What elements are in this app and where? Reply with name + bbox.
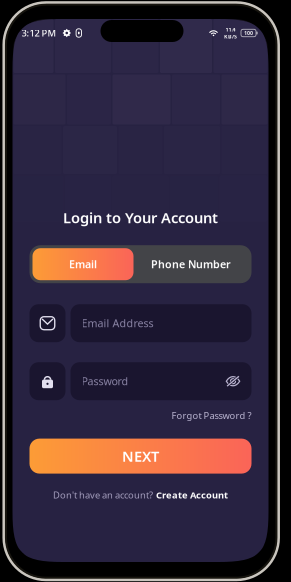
button[interactable]: Create Account	[156, 489, 228, 501]
button[interactable]: Password	[29, 362, 65, 400]
staticText: Login to Your Account	[63, 208, 218, 227]
staticText: Email Address	[81, 316, 153, 330]
button[interactable]: NEXT	[29, 439, 251, 474]
staticText: Don't have an account?	[53, 489, 153, 501]
staticText: NEXT	[122, 446, 159, 466]
button[interactable]: Forgot Password ?	[171, 409, 251, 422]
staticText: Password	[81, 374, 128, 388]
button[interactable]: Email	[32, 248, 133, 280]
staticText: Email	[69, 257, 97, 271]
staticText: 11.4	[225, 26, 235, 33]
button[interactable]: Password	[70, 362, 251, 400]
button[interactable]: Email	[29, 304, 65, 342]
button[interactable]: Email Address	[70, 304, 251, 342]
staticText: KB/S	[224, 33, 237, 40]
staticText: Phone Number	[151, 257, 231, 271]
staticText: 100	[244, 29, 253, 37]
button[interactable]: Phone Number	[133, 248, 248, 280]
staticText: 3:12 PM	[21, 27, 56, 39]
staticText: Forgot Password ?	[171, 409, 251, 422]
staticText: Create Account	[156, 489, 228, 501]
